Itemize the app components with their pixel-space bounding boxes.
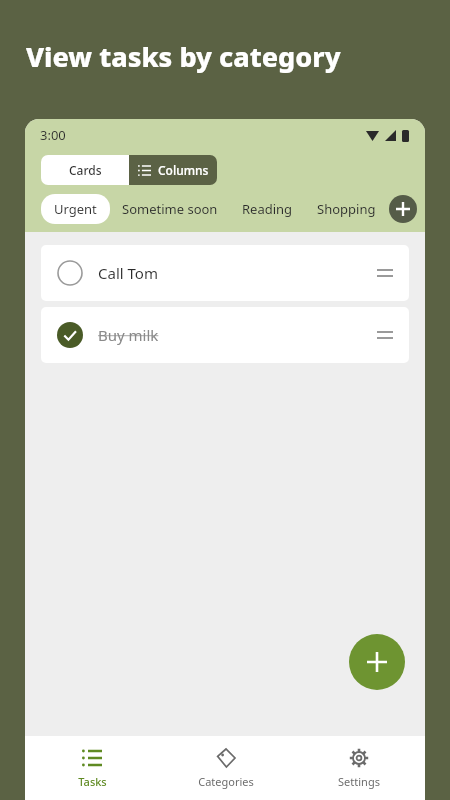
button[interactable]: Categories <box>159 736 292 800</box>
staticText: Settings <box>338 774 380 789</box>
button[interactable]: Reading <box>230 194 305 224</box>
button[interactable]: Buy milk <box>41 307 409 363</box>
staticText: Reading <box>242 200 293 218</box>
button[interactable]: Cards <box>41 155 129 185</box>
button[interactable]: Urgent <box>41 194 110 224</box>
staticText: Tasks <box>78 774 107 789</box>
staticText: U <box>400 200 410 218</box>
button[interactable]: Sometime soon <box>110 194 230 224</box>
staticText: Cards <box>69 162 102 178</box>
staticText: View tasks by category <box>26 38 341 75</box>
button[interactable]: Add task <box>349 634 405 690</box>
button[interactable]: Add category <box>389 195 417 223</box>
button[interactable]: Tasks <box>25 736 159 800</box>
staticText: Categories <box>198 774 254 789</box>
staticText: Shopping <box>317 200 376 218</box>
staticText: Call Tom <box>98 263 158 283</box>
button[interactable]: U <box>388 194 422 224</box>
button[interactable]: Shopping <box>305 194 388 224</box>
button[interactable]: Settings <box>292 736 425 800</box>
staticText: 3:00 <box>40 126 66 144</box>
staticText: Urgent <box>54 200 97 218</box>
staticText: Columns <box>158 162 209 178</box>
button[interactable]: Columns <box>129 155 217 185</box>
staticText: Sometime soon <box>122 200 218 218</box>
button[interactable]: Call Tom <box>41 245 409 301</box>
staticText: Buy milk <box>98 325 159 345</box>
